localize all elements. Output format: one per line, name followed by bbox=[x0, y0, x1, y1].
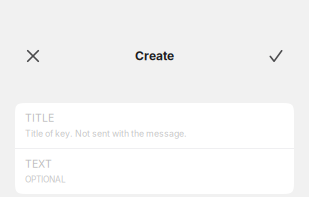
button[interactable]: Close bbox=[19, 42, 47, 70]
staticText: Create bbox=[135, 49, 174, 63]
button[interactable]: Save bbox=[262, 42, 290, 70]
button[interactable]: TITLE bbox=[15, 103, 294, 148]
staticText: TITLE bbox=[25, 112, 54, 124]
staticText: Title of key. Not sent with the message. bbox=[25, 128, 187, 139]
staticText: OPTIONAL bbox=[25, 174, 66, 185]
button[interactable]: TEXT bbox=[15, 149, 294, 194]
staticText: TEXT bbox=[25, 158, 52, 170]
